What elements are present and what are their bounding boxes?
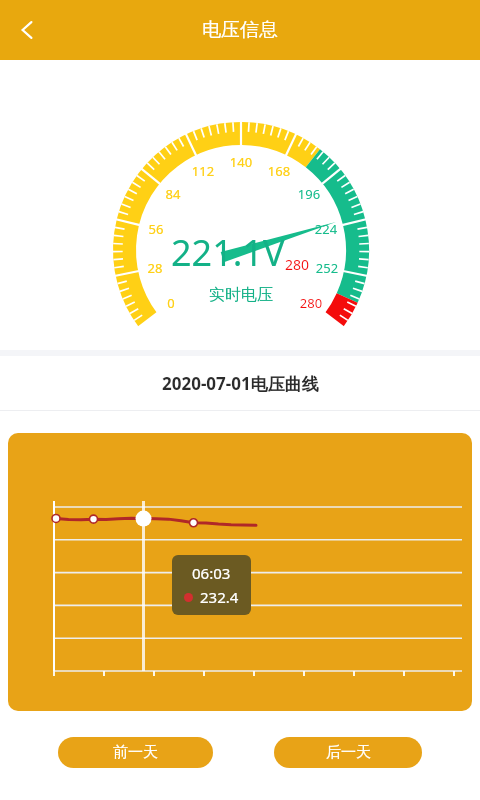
button[interactable]: Back bbox=[4, 7, 50, 53]
staticText: 232.4 bbox=[200, 587, 239, 607]
button[interactable]: 前一天 bbox=[58, 737, 213, 768]
staticText: 28 bbox=[138, 259, 172, 277]
staticText: 电压信息 bbox=[202, 18, 278, 42]
staticText: 后一天 bbox=[326, 743, 371, 762]
button[interactable]: 后一天 bbox=[274, 737, 422, 768]
staticText: 56 bbox=[139, 220, 173, 238]
staticText: 112 bbox=[186, 162, 220, 180]
staticText: 280 bbox=[285, 255, 310, 274]
staticText: 实时电压 bbox=[209, 285, 273, 305]
staticText: 196 bbox=[292, 185, 326, 203]
staticText: 06:03 bbox=[192, 563, 231, 583]
staticText: 224 bbox=[309, 220, 343, 238]
staticText: 0 bbox=[154, 294, 188, 312]
staticText: 280 bbox=[294, 294, 328, 312]
staticText: 221.1V bbox=[171, 228, 285, 277]
staticText: 2020-07-01电压曲线 bbox=[162, 372, 319, 395]
staticText: 252 bbox=[310, 259, 344, 277]
staticText: 前一天 bbox=[113, 743, 158, 762]
staticText: 140 bbox=[224, 153, 258, 171]
staticText: 84 bbox=[156, 185, 190, 203]
staticText: 168 bbox=[262, 162, 296, 180]
